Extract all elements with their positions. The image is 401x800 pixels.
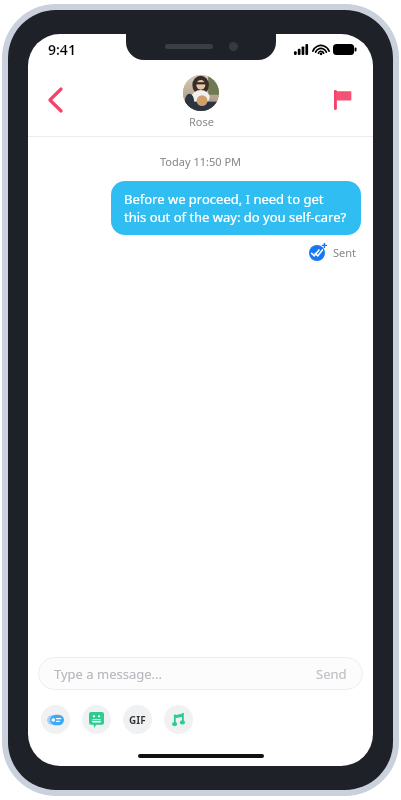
button[interactable]: Type a message...: [38, 657, 363, 690]
button[interactable]: Rose: [183, 75, 219, 129]
staticText: Sent: [333, 245, 357, 260]
staticText: 9:41: [48, 40, 76, 59]
button[interactable]: Emoji: [82, 705, 111, 734]
button[interactable]: Stickers: [41, 705, 70, 734]
button[interactable]: Music: [164, 705, 193, 734]
staticText: Rose: [189, 114, 214, 129]
button[interactable]: GIF: [123, 705, 152, 734]
button[interactable]: Report: [321, 78, 365, 122]
button[interactable]: Before we proceed, I need to get this ou…: [111, 181, 361, 235]
staticText: Send: [316, 665, 347, 683]
staticText: GIF: [129, 713, 146, 727]
staticText: Today 11:50 PM: [28, 154, 373, 169]
staticText: Type a message...: [54, 665, 316, 683]
staticText: Before we proceed, I need to get this ou…: [124, 190, 348, 226]
button[interactable]: Back: [34, 78, 78, 122]
